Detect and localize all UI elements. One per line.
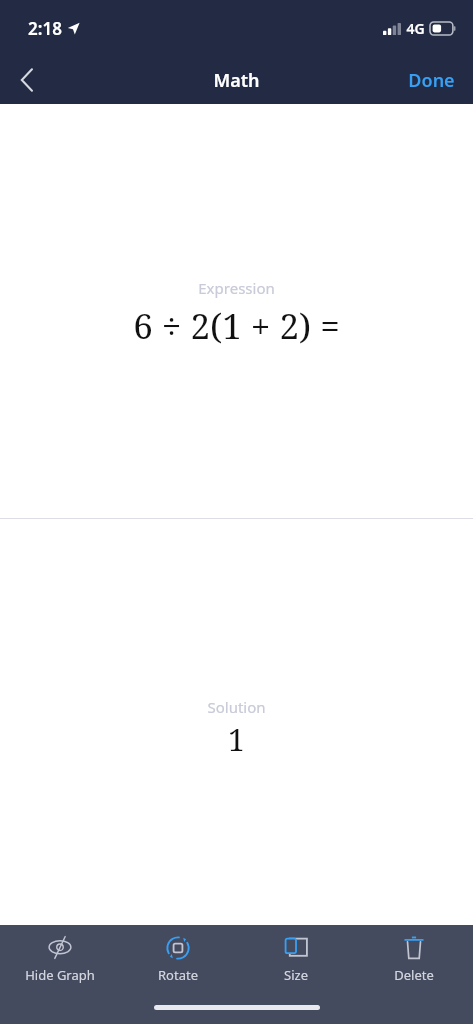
staticText: 2:18 (28, 17, 62, 40)
button[interactable]: Size (237, 925, 355, 993)
staticText: Math (213, 68, 260, 93)
staticText: Solution (207, 697, 266, 717)
staticText: Hide Graph (25, 966, 95, 984)
button[interactable]: Delete (355, 925, 473, 993)
staticText: 1 (228, 719, 245, 760)
button[interactable]: Hide Graph (0, 925, 119, 993)
staticText: Done (408, 68, 455, 93)
button[interactable]: Done (390, 60, 473, 101)
staticText: Delete (394, 966, 434, 984)
staticText: Size (284, 966, 308, 984)
staticText: Rotate (158, 966, 198, 984)
staticText: 4G (406, 19, 425, 38)
button[interactable]: Rotate (119, 925, 237, 993)
button[interactable]: Back (0, 56, 52, 104)
staticText: Expression (198, 278, 275, 298)
staticText: 6 ÷ 2(1 + 2) = (133, 302, 340, 350)
